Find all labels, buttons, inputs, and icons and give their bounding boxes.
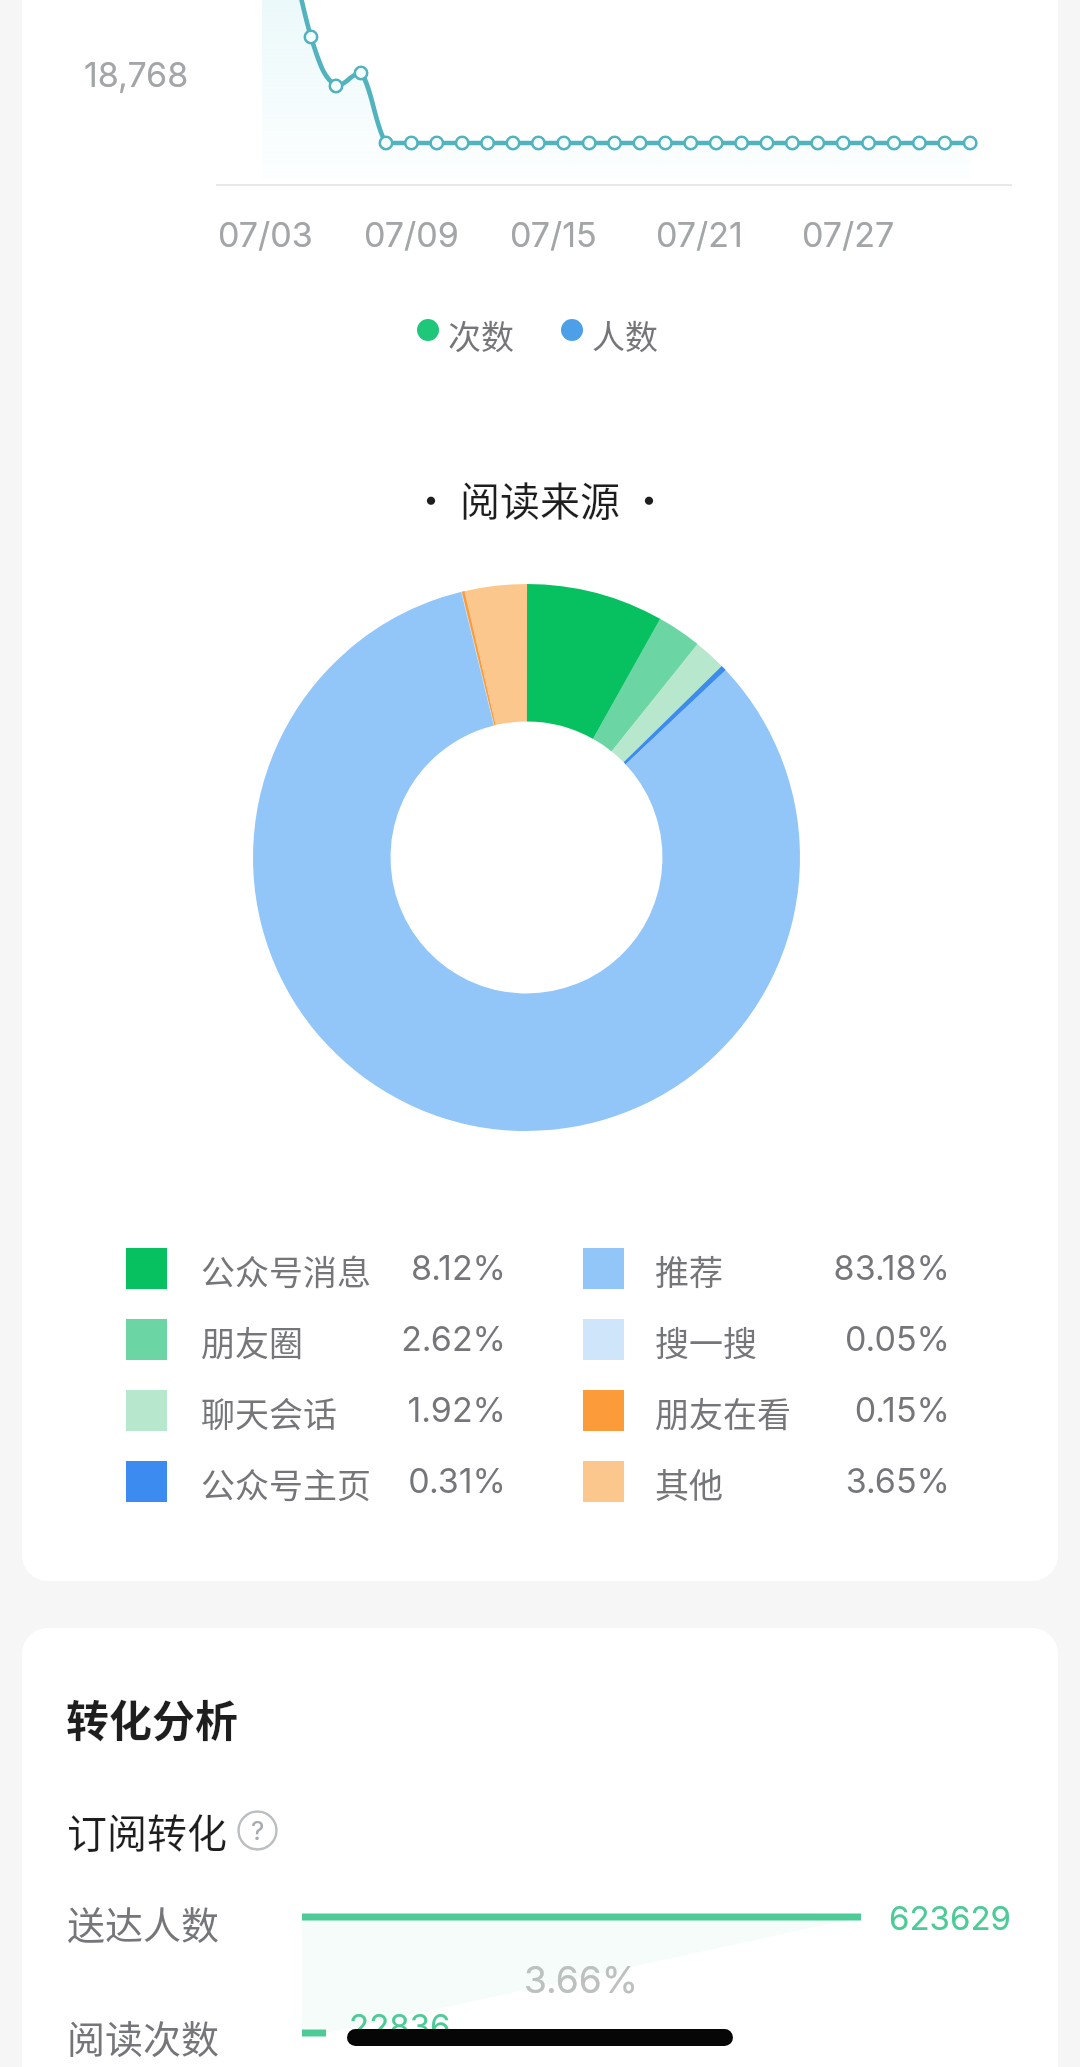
button[interactable]: 公众号消息: [120, 1240, 506, 1296]
other: Reading source breakdown: [253, 584, 800, 1131]
staticText: 其他: [655, 1459, 723, 1508]
staticText: 07/27: [802, 214, 895, 255]
button[interactable]: Help about subscription conversion: [237, 1810, 278, 1851]
staticText: ?: [251, 1815, 265, 1846]
button[interactable]: 推荐: [577, 1240, 950, 1296]
staticText: 搜一搜: [655, 1317, 757, 1366]
staticText: 转化分析: [66, 1687, 238, 1749]
staticText: 送达人数: [67, 1895, 220, 1950]
staticText: 公众号消息: [201, 1246, 371, 1295]
staticText: 3.66%: [524, 1957, 638, 2002]
staticText: 阅读次数: [67, 2009, 220, 2064]
staticText: 07/09: [364, 214, 459, 255]
staticText: 18,768: [84, 54, 189, 95]
staticText: 公众号主页: [201, 1459, 371, 1508]
button[interactable]: 聊天会话: [120, 1382, 506, 1438]
staticText: 朋友圈: [201, 1317, 303, 1366]
staticText: 07/15: [510, 214, 597, 255]
button[interactable]: 次数: [403, 305, 535, 365]
staticText: 聊天会话: [201, 1388, 337, 1437]
staticText: 07/21: [656, 214, 743, 255]
button[interactable]: 公众号主页: [120, 1453, 506, 1509]
staticText: 3.65%: [810, 1460, 950, 1501]
button[interactable]: 其他: [577, 1453, 950, 1509]
staticText: 623629: [889, 1898, 1012, 1938]
staticText: 推荐: [655, 1246, 723, 1295]
button[interactable]: 朋友圈: [120, 1311, 506, 1367]
staticText: 朋友在看: [655, 1388, 791, 1437]
staticText: 0.31%: [390, 1460, 506, 1501]
button[interactable]: 人数: [547, 305, 679, 365]
staticText: 22836: [349, 2006, 451, 2046]
button[interactable]: 搜一搜: [577, 1311, 950, 1367]
staticText: 人数: [592, 311, 658, 359]
staticText: 8.12%: [390, 1247, 506, 1288]
other: Reading trend chart: [0, 0, 1080, 200]
staticText: 1.92%: [390, 1389, 506, 1430]
staticText: 0.15%: [810, 1389, 950, 1430]
staticText: 订阅转化: [67, 1802, 227, 1860]
staticText: 2.62%: [390, 1318, 506, 1359]
staticText: 83.18%: [810, 1247, 950, 1288]
staticText: · 阅读来源 ·: [0, 470, 1080, 528]
staticText: 0.05%: [810, 1318, 950, 1359]
button[interactable]: 朋友在看: [577, 1382, 950, 1438]
staticText: 次数: [448, 311, 514, 359]
staticText: 07/03: [218, 214, 313, 255]
